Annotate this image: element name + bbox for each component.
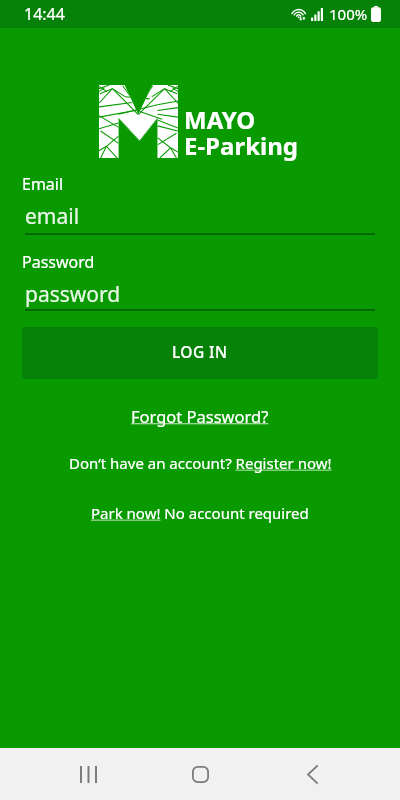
staticText: email <box>25 202 80 231</box>
staticText: Email <box>22 173 64 195</box>
button[interactable]: LOG IN <box>22 327 378 379</box>
button[interactable]: Park now! No account required <box>91 503 309 523</box>
staticText: Password <box>22 251 95 273</box>
button[interactable]: Forgot Password? <box>131 405 269 427</box>
staticText: Park now! No account required <box>91 503 309 523</box>
staticText: password <box>25 280 121 309</box>
button[interactable]: Back <box>288 750 336 798</box>
staticText: MAYO <box>184 103 256 136</box>
button[interactable]: Recent apps <box>64 750 112 798</box>
staticText: LOG IN <box>172 341 228 362</box>
staticText: Forgot Password? <box>131 405 269 427</box>
staticText: 100% <box>329 4 368 24</box>
button[interactable]: Home <box>176 750 224 798</box>
staticText: E-Parking <box>184 129 298 162</box>
staticText: Don’t have an account? Register now! <box>69 453 332 473</box>
staticText: 14:44 <box>24 3 65 25</box>
button[interactable]: Don’t have an account? Register now! <box>69 453 332 473</box>
